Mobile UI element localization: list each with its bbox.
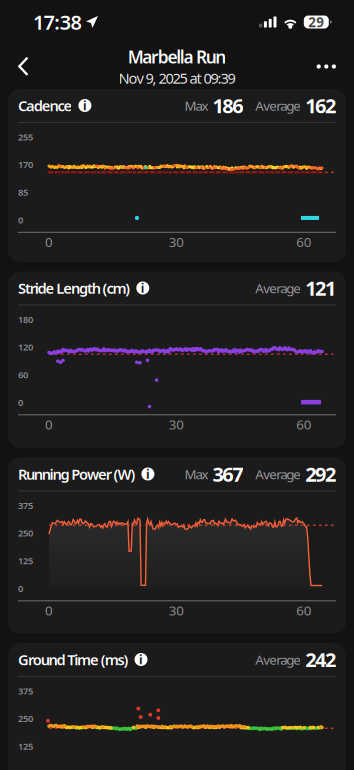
staticText: 30 — [169, 601, 184, 619]
staticText: Ground Time (ms) — [18, 650, 128, 669]
staticText: 162 — [305, 92, 336, 119]
staticText: 17:38 — [33, 9, 81, 35]
staticText: Stride Length (cm) — [18, 278, 130, 298]
staticText: 85 — [18, 186, 28, 198]
staticText: 120 — [18, 341, 33, 353]
staticText: 180 — [18, 313, 33, 325]
staticText: Max — [184, 97, 208, 114]
staticText: 375 — [18, 499, 33, 511]
staticText: Average — [255, 279, 301, 297]
staticText: 30 — [169, 233, 184, 251]
staticText: Average — [255, 97, 301, 114]
button[interactable]: More options — [305, 45, 348, 88]
staticText: 375 — [18, 685, 33, 697]
staticText: 60 — [296, 233, 312, 251]
staticText: Cadence — [18, 96, 72, 115]
staticText: 60 — [296, 601, 312, 619]
staticText: Running Power (W) — [18, 464, 135, 484]
staticText: i — [141, 280, 145, 296]
staticText: 0 — [18, 396, 23, 409]
staticText: 0 — [45, 233, 53, 251]
staticText: Average — [255, 651, 301, 668]
staticText: 186 — [212, 92, 243, 119]
staticText: 250 — [18, 712, 33, 725]
staticText: 60 — [18, 368, 28, 381]
staticText: 121 — [305, 275, 336, 301]
staticText: 0 — [18, 214, 23, 226]
staticText: 242 — [305, 646, 336, 673]
staticText: 29 — [308, 13, 324, 31]
staticText: Marbella Run — [128, 45, 226, 68]
staticText: 170 — [18, 158, 33, 171]
staticText: 60 — [296, 415, 312, 433]
staticText: 250 — [18, 527, 33, 539]
staticText: 125 — [18, 740, 33, 752]
staticText: 0 — [18, 582, 23, 595]
staticText: 125 — [18, 554, 33, 567]
staticText: 292 — [305, 461, 336, 487]
button[interactable]: Back — [6, 44, 41, 88]
staticText: i — [83, 97, 87, 113]
staticText: 367 — [212, 461, 243, 487]
staticText: Nov 9, 2025 at 09:39 — [118, 68, 235, 88]
staticText: 0 — [45, 415, 53, 433]
staticText: 255 — [18, 131, 33, 143]
staticText: i — [139, 651, 143, 667]
staticText: Max — [184, 465, 208, 483]
staticText: 30 — [169, 415, 184, 433]
staticText: 0 — [45, 601, 53, 619]
staticText: i — [146, 466, 150, 482]
staticText: Average — [255, 465, 301, 483]
